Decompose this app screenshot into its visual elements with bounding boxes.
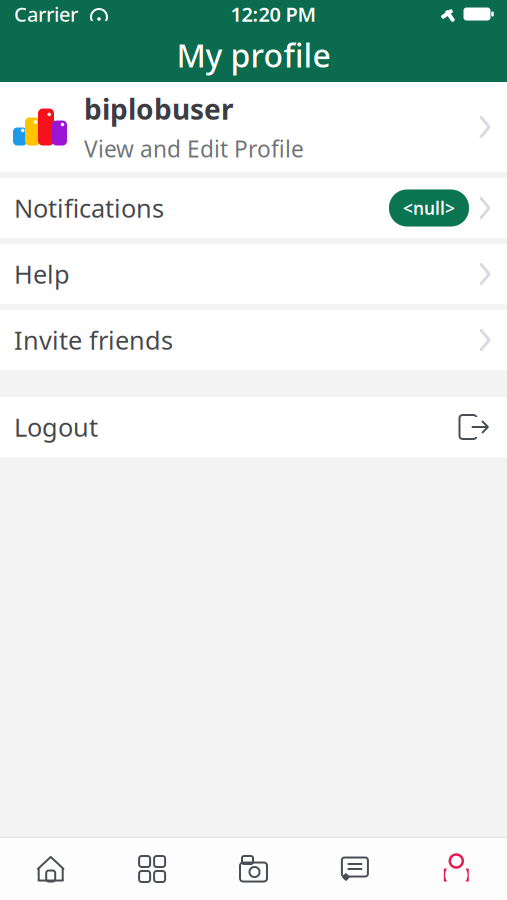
staticText: Logout [14,410,98,444]
button[interactable]: Invite friends [0,310,507,370]
staticText: biplobuser [84,90,234,128]
staticText: Invite friends [14,323,173,357]
staticText: 12:20 PM [230,1,316,27]
staticText: My profile [176,34,330,76]
staticText: View and Edit Profile [84,133,304,164]
staticText [78,0,90,29]
button[interactable]: biplobuser [0,82,507,172]
button[interactable]: Logout [0,397,507,457]
button[interactable]: Profile [406,838,507,900]
staticText: Help [14,257,70,291]
button[interactable]: Home [0,838,101,900]
staticText: Carrier [14,1,78,27]
button[interactable]: Help [0,244,507,304]
button[interactable]: Notifications [0,178,507,238]
staticText: <null> [403,196,455,219]
button[interactable]: Browse [101,838,203,900]
staticText: Notifications [14,191,164,225]
button[interactable]: Camera [203,838,304,900]
button[interactable]: Messages [304,838,406,900]
